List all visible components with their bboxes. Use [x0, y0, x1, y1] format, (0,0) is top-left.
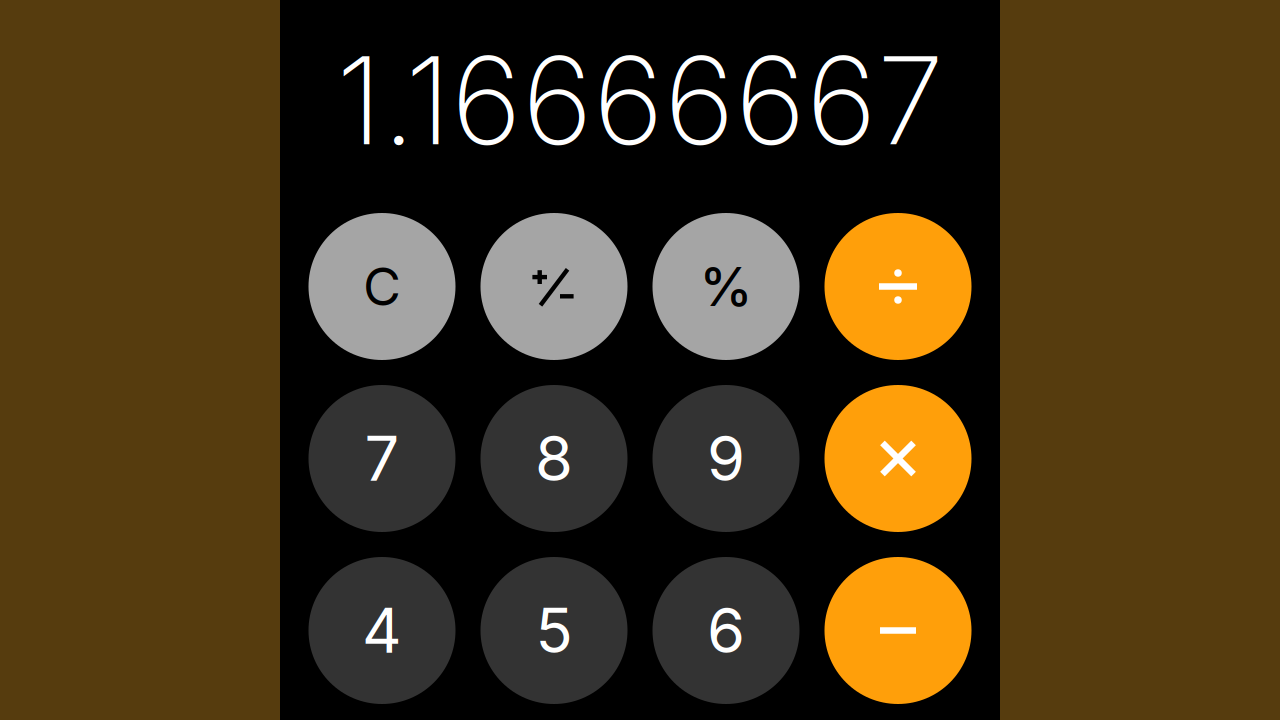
staticText: 8: [535, 421, 573, 496]
button[interactable]: Divide: [824, 213, 971, 360]
button[interactable]: 9: [652, 385, 799, 532]
button[interactable]: Multiply: [824, 385, 971, 532]
button[interactable]: 6: [652, 557, 799, 704]
button[interactable]: Clear: [308, 213, 455, 360]
button[interactable]: Percent: [652, 213, 799, 360]
staticText: 5: [535, 593, 572, 668]
button[interactable]: 5: [480, 557, 627, 704]
staticText: C: [363, 255, 401, 318]
staticText: 7: [364, 421, 399, 496]
staticText: 1.16666667: [336, 27, 944, 173]
button[interactable]: 8: [480, 385, 627, 532]
staticText: %: [699, 254, 752, 319]
staticText: 9: [707, 421, 745, 496]
button[interactable]: Minus: [824, 557, 971, 704]
button[interactable]: 7: [308, 385, 455, 532]
button[interactable]: Plus Minus: [480, 213, 627, 360]
button[interactable]: 4: [308, 557, 455, 704]
staticText: 6: [707, 593, 745, 668]
staticText: 4: [362, 593, 402, 668]
